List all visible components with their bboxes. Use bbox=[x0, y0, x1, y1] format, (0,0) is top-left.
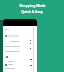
button[interactable] bbox=[5, 35, 19, 37]
staticText: Shopping Made bbox=[19, 3, 46, 8]
button[interactable] bbox=[6, 56, 8, 58]
staticText: Quick & Easy bbox=[21, 9, 43, 14]
